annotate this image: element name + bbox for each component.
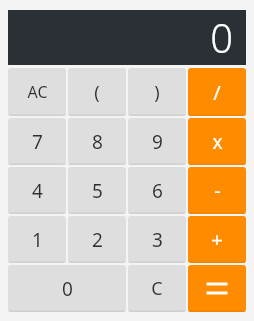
staticText: AC (27, 81, 48, 103)
staticText: 6 (152, 178, 163, 204)
staticText: ) (154, 80, 160, 105)
staticText: 2 (92, 227, 103, 253)
staticText: 0 (210, 10, 233, 63)
button[interactable]: ( (68, 68, 126, 116)
staticText: 8 (92, 129, 103, 155)
button[interactable]: 0 (8, 265, 126, 312)
button[interactable]: Multiply (188, 118, 246, 165)
button[interactable]: 2 (68, 216, 126, 263)
button[interactable]: 1 (8, 216, 66, 263)
staticText: C (151, 276, 163, 301)
staticText: 1 (32, 227, 43, 253)
staticText: - (214, 177, 221, 204)
button[interactable]: 8 (68, 118, 126, 165)
staticText: 7 (32, 129, 43, 155)
button[interactable]: Minus (188, 167, 246, 214)
button[interactable]: 9 (128, 118, 186, 165)
button[interactable]: Equals (188, 265, 246, 312)
button[interactable]: 6 (128, 167, 186, 214)
staticText: + (211, 226, 223, 253)
staticText: x (212, 129, 223, 155)
staticText: 3 (152, 227, 163, 253)
staticText: / (213, 79, 221, 106)
button[interactable]: 5 (68, 167, 126, 214)
button[interactable]: 3 (128, 216, 186, 263)
staticText: 0 (62, 276, 73, 302)
button[interactable]: ) (128, 68, 186, 116)
button[interactable]: Plus (188, 216, 246, 263)
button[interactable]: 7 (8, 118, 66, 165)
staticText: ( (94, 80, 100, 105)
button[interactable]: 4 (8, 167, 66, 214)
button[interactable]: AC (8, 68, 66, 116)
button[interactable]: Divide (188, 68, 246, 116)
staticText: 4 (32, 178, 43, 204)
button[interactable]: C (128, 265, 186, 312)
staticText: 5 (92, 178, 103, 204)
staticText: 9 (152, 129, 163, 155)
